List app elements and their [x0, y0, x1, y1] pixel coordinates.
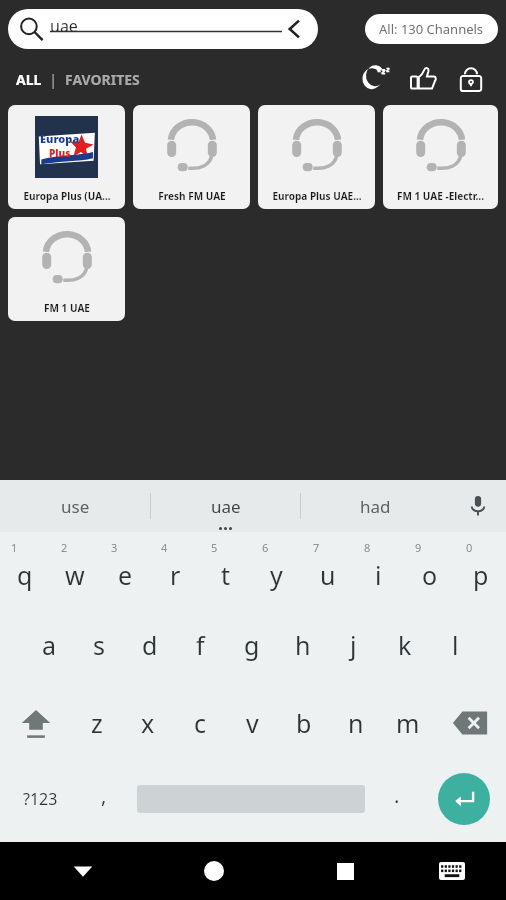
- button[interactable]: Europa Plus UAE...: [258, 105, 375, 209]
- button[interactable]: c: [174, 684, 226, 762]
- button[interactable]: l: [430, 606, 481, 684]
- button[interactable]: Sleep timer: [356, 60, 394, 98]
- button[interactable]: uae: [8, 9, 318, 49]
- staticText: a: [42, 628, 57, 662]
- staticText: 7: [313, 540, 320, 555]
- staticText: 8: [364, 540, 371, 555]
- button[interactable]: s: [74, 606, 124, 684]
- button[interactable]: k: [379, 606, 430, 684]
- staticText: z: [91, 706, 103, 740]
- staticText: q: [17, 558, 33, 592]
- button[interactable]: ?123: [0, 762, 80, 836]
- staticText: v: [246, 706, 259, 740]
- button[interactable]: 8: [353, 532, 404, 606]
- staticText: b: [296, 706, 312, 740]
- staticText: |: [42, 70, 65, 89]
- staticText: r: [170, 558, 181, 592]
- staticText: FM 1 UAE -Electr...: [397, 189, 484, 203]
- button[interactable]: Fresh FM UAE: [133, 105, 250, 209]
- button[interactable]: v: [226, 684, 278, 762]
- button[interactable]: b: [278, 684, 330, 762]
- staticText: Europa: [40, 131, 80, 146]
- button[interactable]: use: [0, 480, 150, 532]
- staticText: t: [221, 558, 231, 592]
- staticText: ?123: [23, 788, 58, 810]
- staticText: ALL: [16, 70, 42, 89]
- button[interactable]: f: [175, 606, 226, 684]
- staticText: had: [360, 495, 391, 518]
- staticText: 6: [262, 540, 269, 555]
- button[interactable]: x: [122, 684, 174, 762]
- staticText: 2: [61, 540, 68, 555]
- button[interactable]: uae: [151, 480, 300, 532]
- button[interactable]: 1: [0, 532, 50, 606]
- button[interactable]: ALL: [16, 70, 42, 89]
- button[interactable]: z: [71, 684, 122, 762]
- staticText: l: [452, 628, 459, 662]
- staticText: All: 130 Channels: [379, 20, 484, 38]
- button[interactable]: 3: [100, 532, 150, 606]
- button[interactable]: 0: [455, 532, 506, 606]
- button[interactable]: Voice input: [450, 480, 506, 532]
- button[interactable]: m: [382, 684, 434, 762]
- button[interactable]: Like: [404, 60, 442, 98]
- button[interactable]: .: [373, 762, 421, 836]
- button[interactable]: Delete: [434, 684, 506, 762]
- button[interactable]: 7: [302, 532, 353, 606]
- staticText: uae: [50, 15, 78, 37]
- button[interactable]: FAVORITES: [65, 70, 140, 89]
- button[interactable]: j: [328, 606, 379, 684]
- button[interactable]: Back: [59, 847, 107, 895]
- button[interactable]: h: [277, 606, 328, 684]
- button[interactable]: Europa: [8, 105, 125, 209]
- staticText: use: [61, 495, 90, 518]
- staticText: d: [142, 628, 158, 662]
- staticText: Europa Plus (UA...: [23, 189, 111, 203]
- staticText: Fresh FM UAE: [158, 189, 226, 203]
- staticText: y: [270, 558, 283, 592]
- button[interactable]: a: [24, 606, 74, 684]
- staticText: k: [398, 628, 412, 662]
- button[interactable]: 6: [251, 532, 302, 606]
- staticText: i: [375, 558, 382, 592]
- button[interactable]: FM 1 UAE: [8, 217, 125, 321]
- staticText: 5: [211, 540, 218, 555]
- button[interactable]: 5: [200, 532, 251, 606]
- staticText: 0: [466, 540, 473, 555]
- button[interactable]: 4: [150, 532, 200, 606]
- button[interactable]: 2: [50, 532, 100, 606]
- button[interactable]: Home: [190, 847, 238, 895]
- staticText: w: [65, 558, 85, 592]
- staticText: s: [93, 628, 105, 662]
- button[interactable]: ,: [80, 762, 128, 836]
- staticText: g: [244, 628, 260, 662]
- button[interactable]: Space: [128, 762, 373, 836]
- staticText: x: [141, 706, 155, 740]
- button[interactable]: had: [301, 480, 450, 532]
- staticText: 1: [11, 540, 18, 555]
- button[interactable]: g: [226, 606, 277, 684]
- button[interactable]: n: [330, 684, 382, 762]
- staticText: 9: [415, 540, 422, 555]
- button[interactable]: 9: [404, 532, 455, 606]
- button[interactable]: d: [124, 606, 175, 684]
- staticText: FAVORITES: [65, 70, 140, 89]
- staticText: uae: [211, 495, 241, 518]
- button[interactable]: All: 130 Channels: [365, 14, 498, 44]
- staticText: 3: [111, 540, 118, 555]
- button[interactable]: FM 1 UAE -Electr...: [383, 105, 498, 209]
- button[interactable]: Back: [282, 16, 308, 42]
- button[interactable]: Recent apps: [321, 847, 369, 895]
- staticText: u: [320, 558, 336, 592]
- staticText: n: [348, 706, 364, 740]
- staticText: .: [394, 782, 400, 809]
- staticText: j: [350, 628, 357, 662]
- staticText: ,: [101, 782, 107, 809]
- button[interactable]: Keyboard: [428, 847, 476, 895]
- staticText: FM 1 UAE: [44, 301, 90, 315]
- button[interactable]: Shift: [0, 684, 71, 762]
- button[interactable]: Lock: [452, 60, 490, 98]
- staticText: p: [473, 558, 489, 592]
- button[interactable]: Enter: [421, 762, 506, 836]
- staticText: f: [196, 628, 205, 662]
